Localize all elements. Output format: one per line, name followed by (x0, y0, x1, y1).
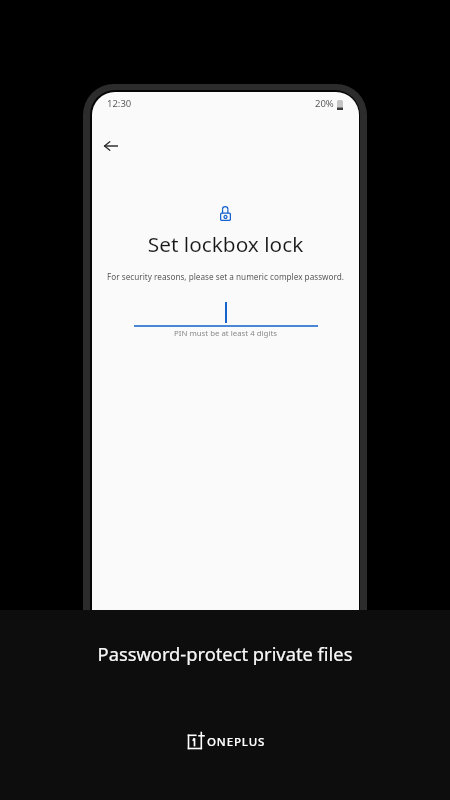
button[interactable]: Back (92, 125, 131, 166)
staticText: 20% (315, 97, 334, 110)
staticText: Password-protect private files (0, 641, 450, 666)
staticText: PIN must be at least 4 digits (92, 328, 359, 339)
staticText: Set lockbox lock (92, 230, 359, 258)
staticText: 12:30 (107, 97, 132, 110)
staticText: For security reasons, please set a numer… (92, 271, 359, 282)
staticText: ONEPLUS (207, 734, 266, 750)
